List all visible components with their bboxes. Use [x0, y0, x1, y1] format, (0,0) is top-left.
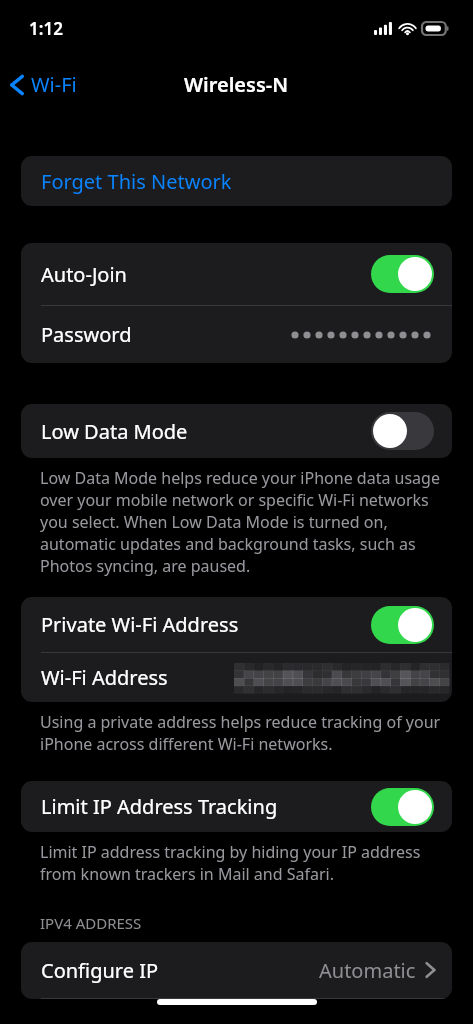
- button[interactable]: Wi-Fi Address: [21, 653, 452, 702]
- staticText: Low Data Mode helps reduce your iPhone d…: [40, 467, 444, 577]
- staticText: Configure IP: [41, 957, 159, 984]
- button[interactable]: Limit IP Address Tracking: [21, 781, 452, 832]
- staticText: Password: [41, 321, 132, 348]
- staticText: Forget This Network: [41, 168, 232, 195]
- staticText: Using a private address helps reduce tra…: [40, 711, 444, 755]
- staticText: Limit IP address tracking by hiding your…: [40, 841, 444, 885]
- staticText: Private Wi-Fi Address: [41, 611, 239, 638]
- button[interactable]: On: [371, 788, 434, 826]
- staticText: Auto-Join: [41, 261, 127, 288]
- staticText: Wireless-N: [184, 71, 289, 98]
- button[interactable]: Low Data Mode: [21, 404, 452, 458]
- staticText: Automatic: [319, 957, 416, 984]
- staticText: IPV4 ADDRESS: [40, 913, 142, 933]
- staticText: Low Data Mode: [41, 418, 188, 445]
- button[interactable]: On: [371, 606, 434, 644]
- button[interactable]: Password: [21, 306, 452, 363]
- button[interactable]: Off: [371, 412, 434, 450]
- staticText: 1:12: [29, 17, 63, 40]
- button[interactable]: Private Wi-Fi Address: [21, 597, 452, 652]
- button[interactable]: Configure IP: [21, 942, 452, 998]
- button[interactable]: Forget This Network: [21, 156, 452, 206]
- staticText: Limit IP Address Tracking: [41, 793, 278, 820]
- staticText: Wi-Fi Address: [41, 664, 168, 691]
- button[interactable]: On: [371, 255, 434, 293]
- button[interactable]: Wi-Fi: [0, 67, 87, 102]
- staticText: Wi-Fi: [31, 71, 77, 98]
- button[interactable]: Auto-Join: [21, 243, 452, 305]
